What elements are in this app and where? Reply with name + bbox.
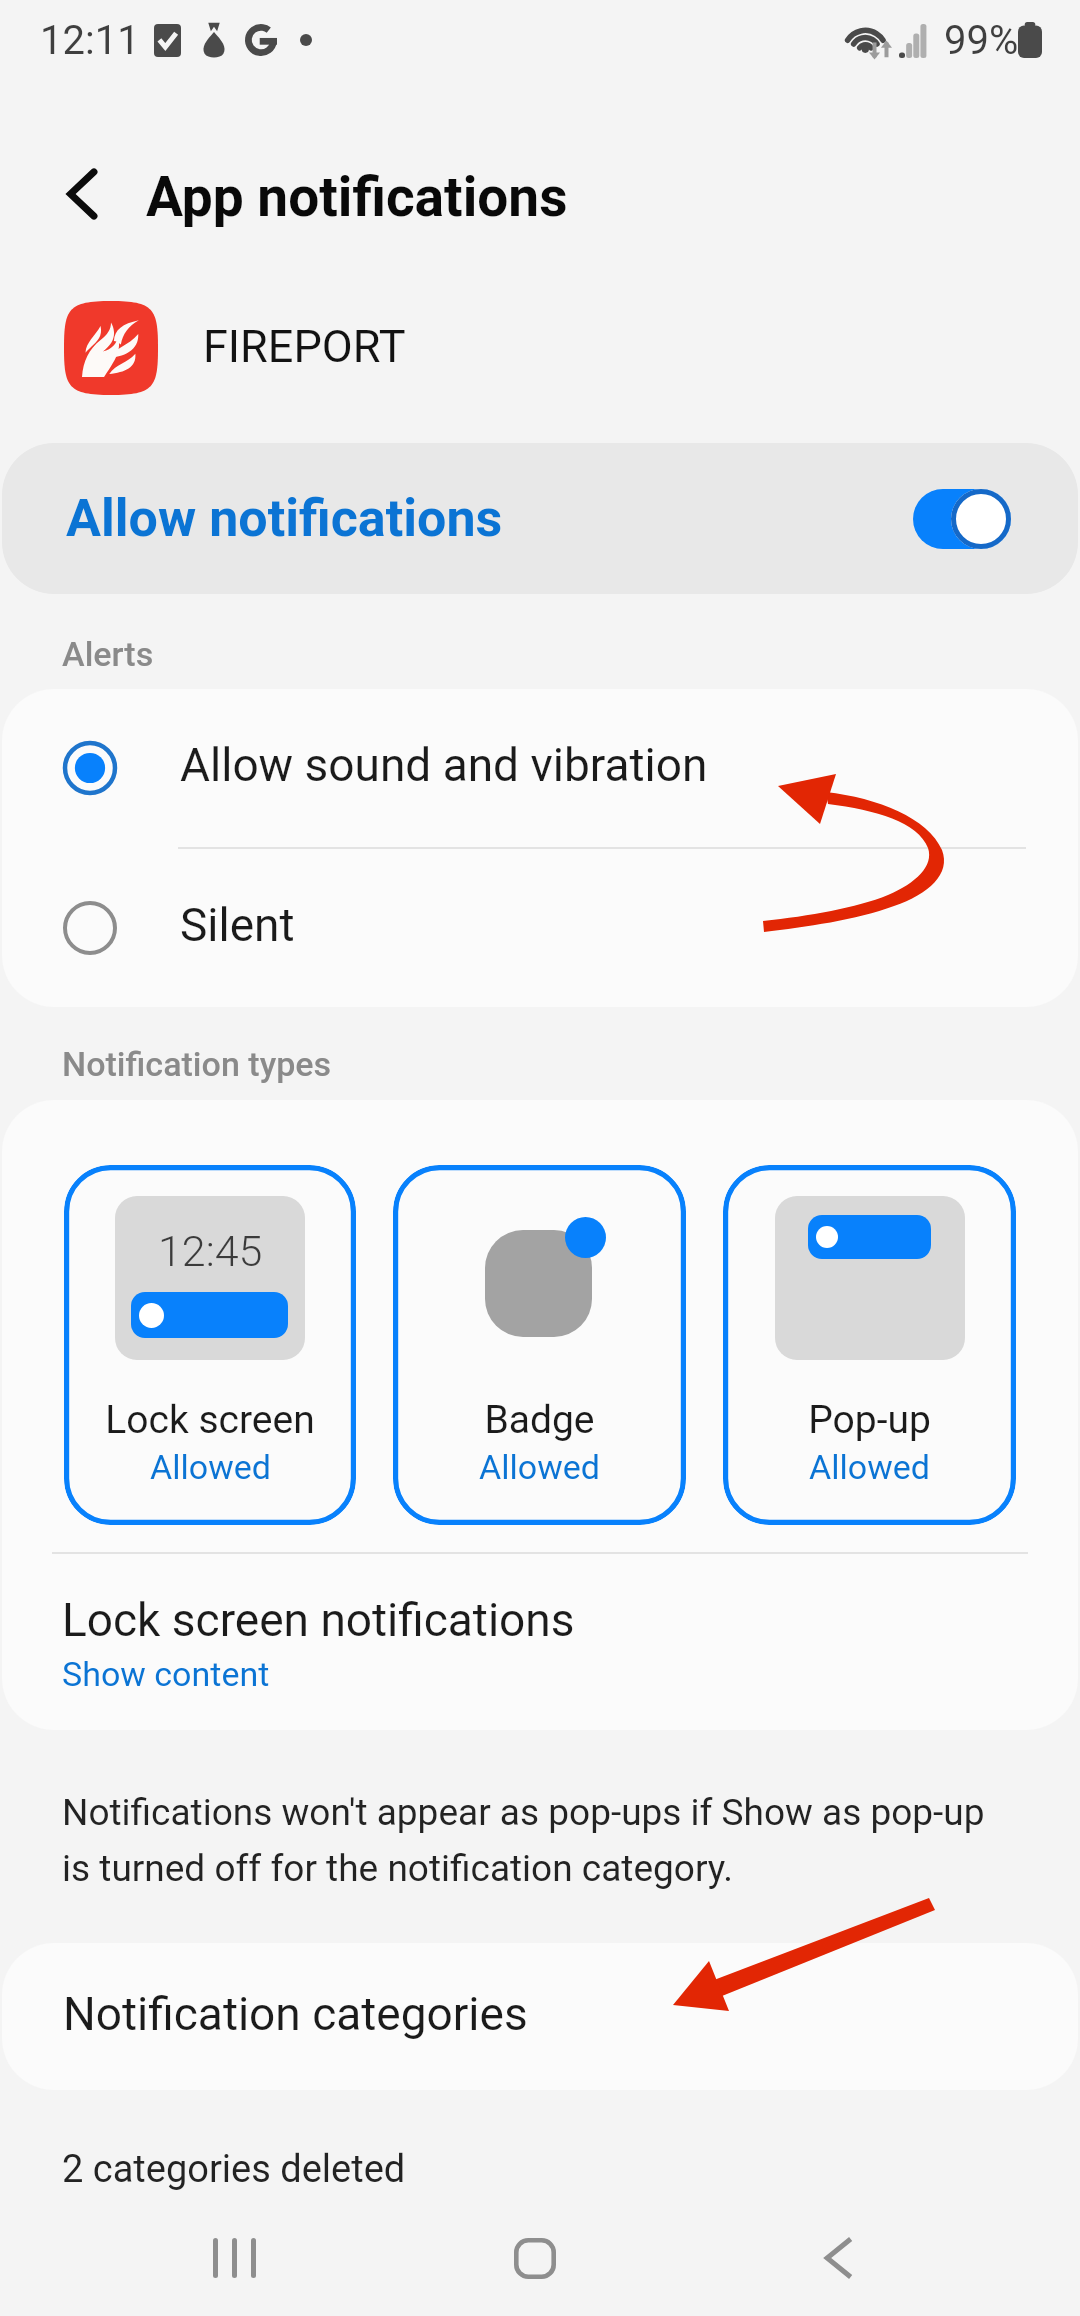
button[interactable]: Badge xyxy=(393,1165,686,1525)
staticText: Allowed xyxy=(479,1447,600,1487)
button[interactable]: Lock screen notifications xyxy=(2,1558,1078,1730)
staticText: Pop-up xyxy=(808,1397,931,1443)
button[interactable]: Allow notifications xyxy=(913,489,1011,549)
staticText: 99% xyxy=(944,17,1019,64)
staticText: Lock screen notifications xyxy=(62,1593,575,1647)
staticText: Allow notifications xyxy=(66,488,503,549)
button[interactable]: Recent apps xyxy=(84,2208,384,2308)
button[interactable]: Back xyxy=(688,2208,988,2308)
staticText: 12:11 xyxy=(40,17,140,64)
staticText: Notification types xyxy=(62,1044,332,1084)
staticText: Allowed xyxy=(809,1447,930,1487)
staticText: 12:45 xyxy=(158,1226,263,1276)
button[interactable]: Pop-up xyxy=(723,1165,1016,1525)
staticText: Badge xyxy=(484,1397,595,1443)
staticText: Show content xyxy=(62,1654,270,1694)
staticText: FIREPORT xyxy=(203,320,406,373)
button[interactable]: Navigate up xyxy=(30,142,134,246)
staticText: 2 categories deleted xyxy=(62,2147,406,2192)
staticText: Silent xyxy=(180,898,295,952)
staticText: Notifications won't appear as pop-ups if… xyxy=(62,1791,985,1890)
button[interactable]: Allow notifications xyxy=(2,443,1078,594)
button[interactable]: Silent xyxy=(2,849,1078,1007)
button[interactable]: Home xyxy=(385,2208,685,2308)
button[interactable]: Allow sound and vibration xyxy=(2,689,1078,847)
staticText: Lock screen xyxy=(105,1397,315,1443)
staticText: Allow sound and vibration xyxy=(180,738,708,792)
button[interactable]: 12:45 xyxy=(64,1165,356,1525)
staticText: App notifications xyxy=(146,165,568,229)
staticText: Notification categories xyxy=(63,1987,528,2041)
staticText: Alerts xyxy=(62,634,154,674)
button[interactable]: Notification categories xyxy=(2,1943,1078,2090)
staticText: Allowed xyxy=(150,1447,271,1487)
